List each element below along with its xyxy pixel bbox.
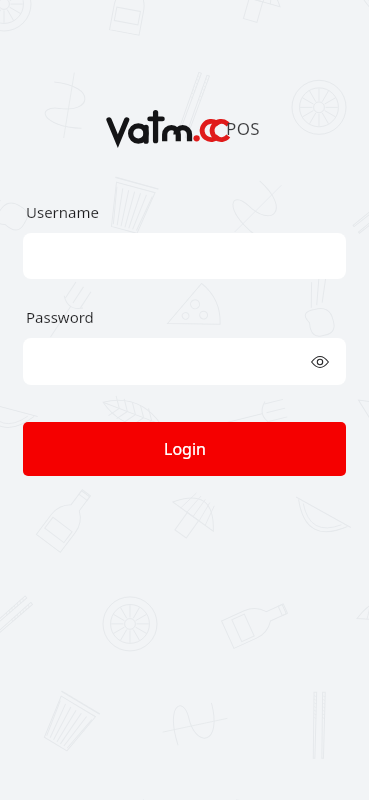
other: vatm POS logo xyxy=(109,108,261,150)
button[interactable]: Show password xyxy=(304,346,336,378)
button[interactable]: Password input field xyxy=(23,338,346,385)
staticText: POS xyxy=(226,117,261,140)
staticText: Password xyxy=(26,307,94,327)
staticText: Username xyxy=(26,202,99,222)
staticText: Login xyxy=(164,438,206,460)
button[interactable]: Login xyxy=(23,422,346,476)
